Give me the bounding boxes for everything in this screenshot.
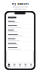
staticText: My Account bbox=[11, 2, 28, 5]
button[interactable] bbox=[6, 24, 34, 29]
staticText: Manage your profile bbox=[12, 6, 27, 8]
button[interactable]: Search bbox=[12, 63, 17, 68]
button[interactable] bbox=[6, 29, 34, 33]
button[interactable]: Alerts bbox=[23, 63, 28, 68]
button[interactable]: Activity bbox=[17, 63, 23, 68]
button[interactable] bbox=[6, 20, 34, 24]
button[interactable] bbox=[6, 33, 34, 37]
button[interactable] bbox=[6, 42, 34, 46]
button[interactable]: Home bbox=[6, 63, 12, 68]
button[interactable] bbox=[6, 37, 34, 42]
button[interactable]: Account bbox=[28, 63, 34, 68]
button[interactable] bbox=[6, 46, 34, 51]
staticText: and preferences bbox=[13, 8, 26, 10]
